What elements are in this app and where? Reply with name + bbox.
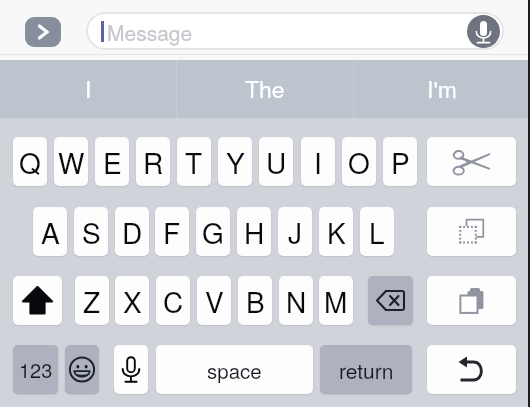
button[interactable]: Emoji [65, 345, 99, 394]
staticText: L [369, 212, 385, 252]
staticText: I'm [427, 72, 457, 105]
staticText: B [246, 281, 265, 321]
button[interactable]: J [278, 207, 312, 256]
button[interactable]: X [115, 276, 149, 325]
staticText: Z [83, 281, 101, 321]
staticText: I [314, 142, 322, 182]
button[interactable]: D [115, 207, 149, 256]
button[interactable]: G [196, 207, 230, 256]
button[interactable]: Voice input [467, 15, 500, 48]
button[interactable]: I [301, 137, 335, 186]
button[interactable]: U [259, 137, 293, 186]
button[interactable]: A [33, 207, 67, 256]
button[interactable]: N [279, 276, 313, 325]
button[interactable]: Message [86, 12, 504, 50]
staticText: V [205, 281, 224, 321]
staticText: W [58, 142, 85, 182]
button[interactable]: T [177, 137, 211, 186]
staticText: J [288, 212, 303, 252]
button[interactable]: Dictation [114, 345, 148, 394]
button[interactable]: Undo [427, 345, 516, 394]
button[interactable]: Cut [427, 137, 516, 186]
button[interactable]: Q [13, 137, 47, 186]
staticText: E [103, 142, 122, 182]
button[interactable]: Backspace [368, 276, 413, 325]
button[interactable]: Expand toolbar [25, 17, 61, 47]
staticText: S [82, 212, 101, 252]
button[interactable]: L [360, 207, 394, 256]
staticText: A [41, 212, 60, 252]
button[interactable]: F [155, 207, 189, 256]
button[interactable]: return [320, 345, 412, 394]
button[interactable]: K [319, 207, 353, 256]
staticText: N [286, 281, 307, 321]
staticText: H [244, 212, 265, 252]
button[interactable]: S [74, 207, 108, 256]
button[interactable]: Paste [427, 276, 516, 325]
button[interactable]: C [156, 276, 190, 325]
staticText: Q [19, 142, 41, 182]
button[interactable]: B [238, 276, 272, 325]
staticText: R [143, 142, 164, 182]
button[interactable]: Shift [13, 276, 62, 325]
staticText: F [163, 212, 181, 252]
button[interactable]: H [237, 207, 271, 256]
staticText: space [207, 355, 262, 384]
staticText: Y [226, 142, 245, 182]
button[interactable]: V [197, 276, 231, 325]
staticText: The [245, 72, 285, 105]
button[interactable]: I [0, 60, 176, 118]
button[interactable]: space [156, 345, 313, 394]
button[interactable]: The [176, 60, 353, 118]
staticText: I [85, 72, 92, 105]
staticText: T [185, 142, 203, 182]
staticText: Message [107, 17, 193, 47]
button[interactable]: Z [75, 276, 109, 325]
staticText: P [391, 142, 410, 182]
button[interactable]: R [136, 137, 170, 186]
button[interactable]: P [383, 137, 417, 186]
staticText: M [324, 281, 348, 321]
staticText: D [122, 212, 143, 252]
button[interactable]: Y [218, 137, 252, 186]
staticText: U [266, 142, 287, 182]
button[interactable]: 123 [13, 345, 58, 394]
button[interactable]: M [319, 276, 353, 325]
button[interactable]: E [95, 137, 129, 186]
staticText: K [327, 212, 346, 252]
staticText: 123 [19, 355, 53, 384]
staticText: C [163, 281, 184, 321]
button[interactable]: W [54, 137, 88, 186]
button[interactable]: I'm [353, 60, 530, 118]
staticText: O [348, 142, 370, 182]
staticText: X [123, 281, 142, 321]
button[interactable]: Select [427, 207, 516, 256]
staticText: return [339, 355, 394, 385]
button[interactable]: O [342, 137, 376, 186]
staticText: G [202, 212, 224, 252]
